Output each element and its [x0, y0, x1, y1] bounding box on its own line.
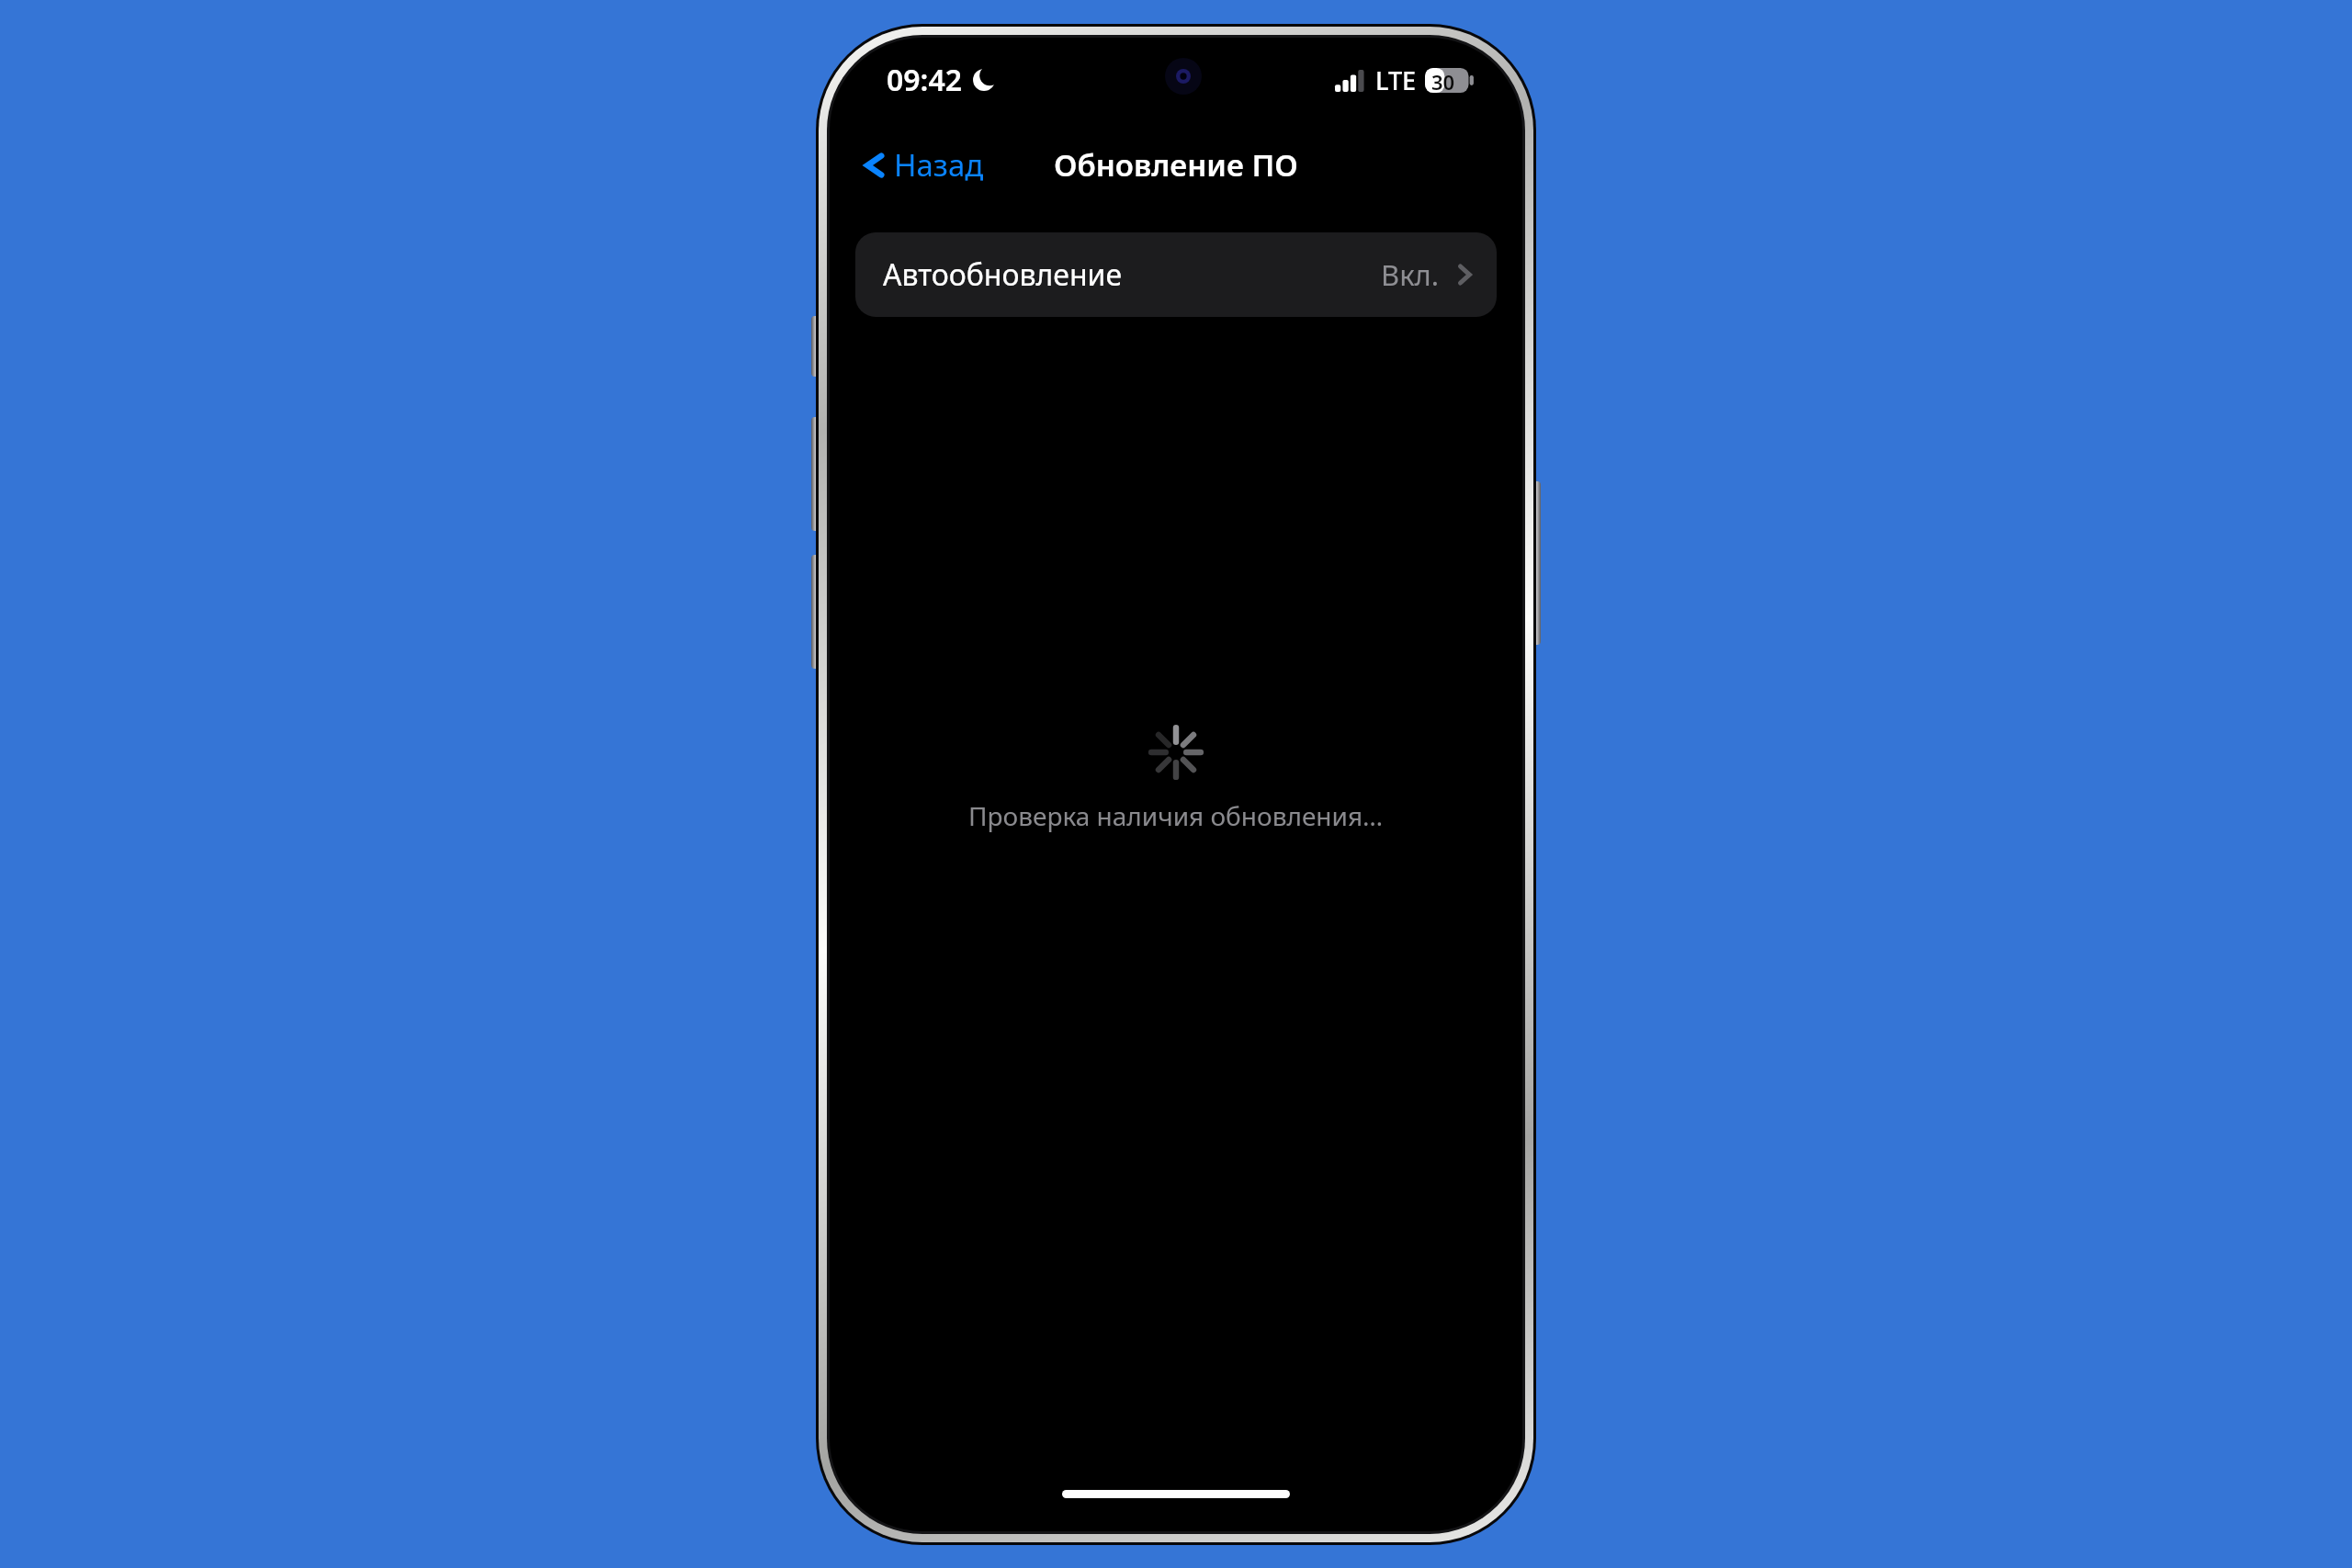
button[interactable]: Автообновление: [855, 232, 1497, 317]
staticText: 30: [1431, 68, 1455, 93]
staticText: Проверка наличия обновления…: [968, 798, 1384, 833]
button[interactable]: Назад: [855, 139, 991, 191]
staticText: Автообновление: [883, 254, 1123, 295]
staticText: LTE: [1375, 63, 1417, 97]
staticText: Вкл.: [1381, 255, 1440, 294]
staticText: Назад: [894, 144, 984, 186]
staticText: Обновление ПО: [1054, 144, 1298, 186]
staticText: 09:42: [887, 60, 963, 100]
